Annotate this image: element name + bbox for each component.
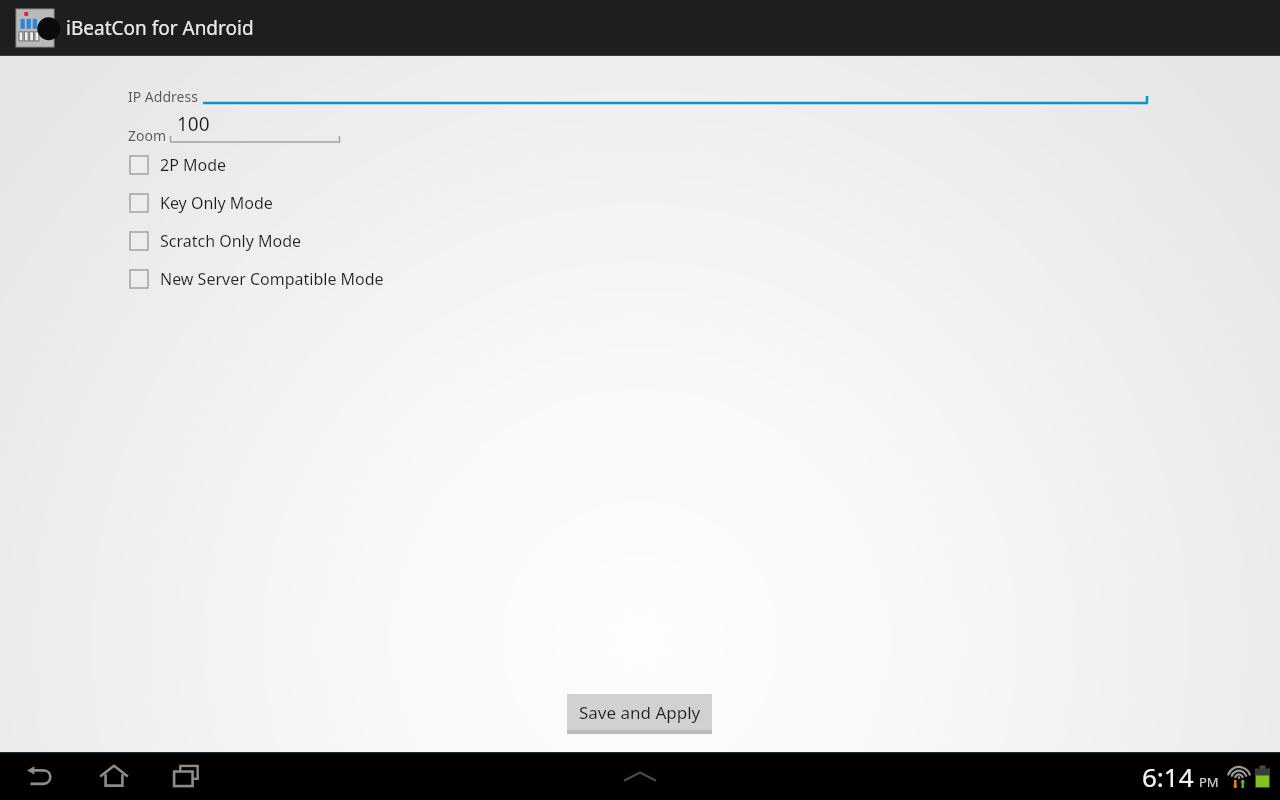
staticText: 6:14: [1142, 759, 1194, 794]
staticText: 2P Mode: [160, 154, 227, 176]
staticText: Scratch Only Mode: [160, 230, 302, 252]
button[interactable]: Back: [20, 752, 60, 800]
button[interactable]: New Server Compatible Mode: [130, 266, 392, 292]
button[interactable]: Key Only Mode: [130, 190, 281, 216]
button[interactable]: Open notifications: [612, 752, 668, 800]
staticText: New Server Compatible Mode: [160, 268, 384, 290]
staticText: iBeatCon for Android: [66, 15, 254, 41]
button[interactable]: Scratch Only Mode: [130, 228, 310, 254]
button[interactable]: Recent apps: [166, 752, 208, 800]
button[interactable]: 2P Mode: [130, 152, 235, 178]
staticText: PM: [1199, 773, 1219, 791]
button[interactable]: Home: [93, 752, 135, 800]
button[interactable]: Zoom input: [170, 110, 340, 143]
button[interactable]: IP Address input: [203, 80, 1148, 104]
button[interactable]: Save and Apply: [567, 694, 712, 732]
staticText: Save and Apply: [579, 701, 701, 724]
staticText: 100: [177, 111, 210, 137]
staticText: IP Address: [128, 87, 198, 106]
staticText: Zoom: [128, 126, 167, 145]
staticText: Key Only Mode: [160, 192, 273, 214]
